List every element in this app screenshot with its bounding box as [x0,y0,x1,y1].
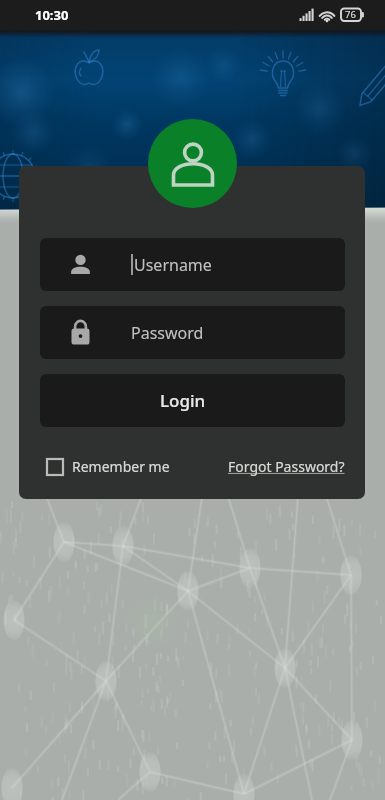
button[interactable]: Profile [148,119,237,208]
button[interactable]: Remember me [46,457,170,476]
staticText: Password [131,322,204,344]
staticText: Login [160,389,206,412]
button[interactable]: Username [40,238,345,291]
staticText: Remember me [72,457,170,476]
button[interactable]: Password [40,306,345,359]
staticText: 76 [345,8,356,21]
staticText: 10:30 [35,6,69,24]
button[interactable]: Forgot Password? [228,457,345,476]
staticText: Username [134,254,212,276]
button[interactable]: Login [40,374,345,427]
